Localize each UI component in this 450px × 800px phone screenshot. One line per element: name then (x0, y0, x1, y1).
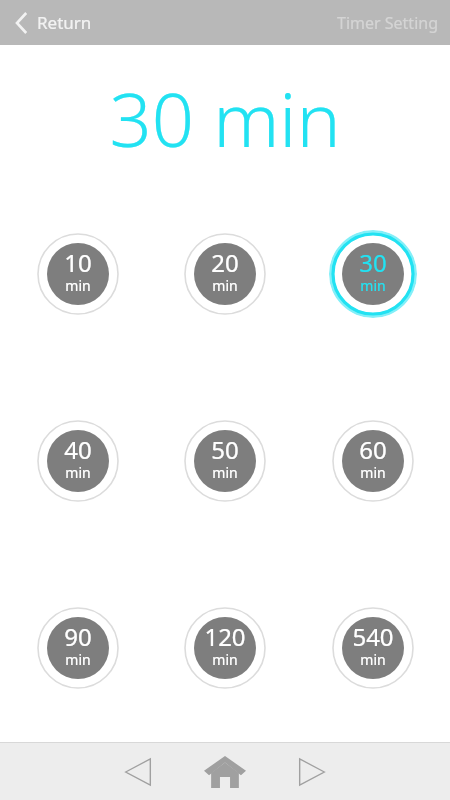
button[interactable]: 10 (34, 230, 122, 318)
button[interactable]: 120 (181, 604, 269, 692)
staticText: 90 (64, 620, 92, 653)
staticText: 40 (64, 433, 92, 466)
staticText: 30 min (109, 68, 341, 169)
staticText: min (212, 650, 238, 669)
button[interactable]: 540 (329, 604, 417, 692)
button[interactable]: 50 (181, 417, 269, 505)
button[interactable]: 90 (34, 604, 122, 692)
staticText: Timer Setting (337, 12, 438, 34)
staticText: Return (37, 11, 92, 34)
staticText: 540 (352, 620, 394, 653)
button[interactable]: Recent apps (282, 743, 342, 800)
staticText: 20 (211, 246, 239, 279)
button[interactable]: Back (108, 743, 168, 800)
staticText: min (212, 463, 238, 482)
button[interactable]: 60 (329, 417, 417, 505)
button[interactable]: Return (0, 0, 104, 45)
staticText: min (212, 276, 238, 295)
staticText: min (65, 463, 91, 482)
button[interactable]: Home (195, 743, 255, 800)
staticText: 60 (359, 433, 387, 466)
staticText: 120 (204, 620, 246, 653)
staticText: min (65, 650, 91, 669)
button[interactable]: 30 (329, 230, 417, 318)
staticText: min (360, 276, 386, 295)
button[interactable]: 20 (181, 230, 269, 318)
staticText: min (65, 276, 91, 295)
staticText: 50 (211, 433, 239, 466)
staticText: min (360, 650, 386, 669)
staticText: min (360, 463, 386, 482)
staticText: 10 (64, 246, 92, 279)
button[interactable]: 40 (34, 417, 122, 505)
staticText: 30 (359, 246, 387, 279)
